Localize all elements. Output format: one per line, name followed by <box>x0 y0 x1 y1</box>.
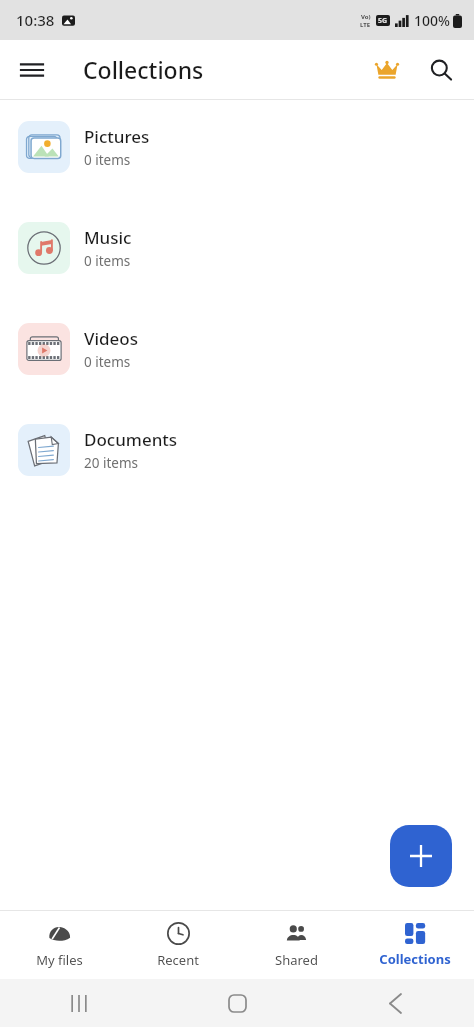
staticText: 100% <box>414 11 450 30</box>
staticText: 0 items <box>84 151 131 169</box>
button[interactable]: Collections <box>356 911 474 979</box>
staticText: 0 items <box>84 353 131 371</box>
staticText: Recent <box>157 951 199 969</box>
staticText: Shared <box>275 951 318 969</box>
button[interactable]: Videos <box>0 323 474 375</box>
staticText: Pictures <box>84 125 150 148</box>
staticText: Collections <box>83 54 204 85</box>
staticText: 10:38 <box>16 10 55 30</box>
button[interactable]: Home <box>209 979 265 1027</box>
staticText: My files <box>36 951 83 969</box>
staticText: Videos <box>84 327 138 350</box>
staticText: Music <box>84 226 132 249</box>
staticText: Collections <box>379 950 451 968</box>
button[interactable]: Premium <box>364 47 410 93</box>
button[interactable]: Shared <box>237 911 355 979</box>
button[interactable]: Music <box>0 222 474 274</box>
button[interactable]: Add <box>390 825 452 887</box>
button[interactable]: Documents <box>0 424 474 476</box>
staticText: 20 items <box>84 454 139 472</box>
button[interactable]: Recent <box>119 911 237 979</box>
staticText: 0 items <box>84 252 131 270</box>
staticText: Vo) <box>361 13 371 21</box>
button[interactable]: Recents <box>51 979 107 1027</box>
staticText: Documents <box>84 428 178 451</box>
button[interactable]: Back <box>367 979 423 1027</box>
staticText: 5G <box>378 16 388 26</box>
button[interactable]: Open navigation menu <box>8 46 56 94</box>
button[interactable]: Pictures <box>0 121 474 173</box>
staticText: LTE <box>360 21 371 29</box>
button[interactable]: My files <box>0 911 118 979</box>
button[interactable]: Search <box>418 47 464 93</box>
